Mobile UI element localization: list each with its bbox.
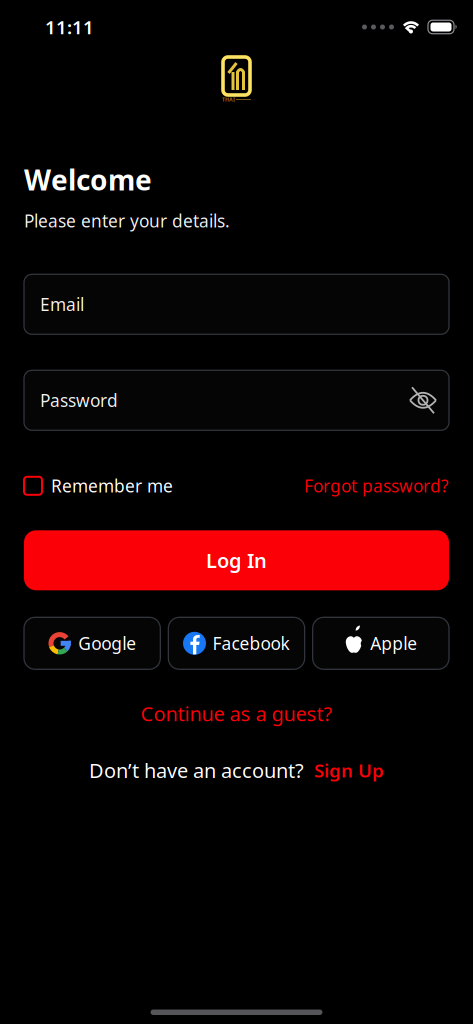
- button[interactable]: Sign in with Apple: [313, 617, 449, 669]
- staticText: Facebook: [212, 632, 289, 655]
- staticText: Don’t have an account?: [89, 757, 304, 783]
- staticText: Welcome: [24, 161, 152, 198]
- button[interactable]: Password: [24, 370, 449, 430]
- button[interactable]: Forgot password?: [304, 474, 449, 497]
- staticText: Google: [78, 632, 136, 655]
- button[interactable]: Sign in with Google: [24, 617, 160, 669]
- staticText: 11:11: [45, 15, 94, 39]
- button[interactable]: Continue as a guest?: [140, 700, 332, 727]
- staticText: Sign Up: [314, 758, 384, 782]
- button[interactable]: Sign in with Facebook: [168, 617, 305, 669]
- staticText: Remember me: [51, 474, 173, 497]
- staticText: THAI: [222, 96, 235, 103]
- button[interactable]: Log In: [24, 530, 449, 590]
- button[interactable]: Show password: [409, 386, 437, 414]
- button[interactable]: Sign Up: [314, 758, 384, 782]
- staticText: Please enter your details.: [24, 209, 230, 232]
- staticText: Apple: [370, 632, 417, 655]
- staticText: Email: [40, 293, 84, 316]
- button[interactable]: Email: [24, 274, 449, 334]
- staticText: Forgot password?: [304, 474, 449, 497]
- staticText: Log In: [206, 547, 267, 574]
- staticText: Continue as a guest?: [140, 700, 332, 727]
- staticText: Password: [40, 389, 118, 412]
- button[interactable]: Remember me: [24, 474, 173, 497]
